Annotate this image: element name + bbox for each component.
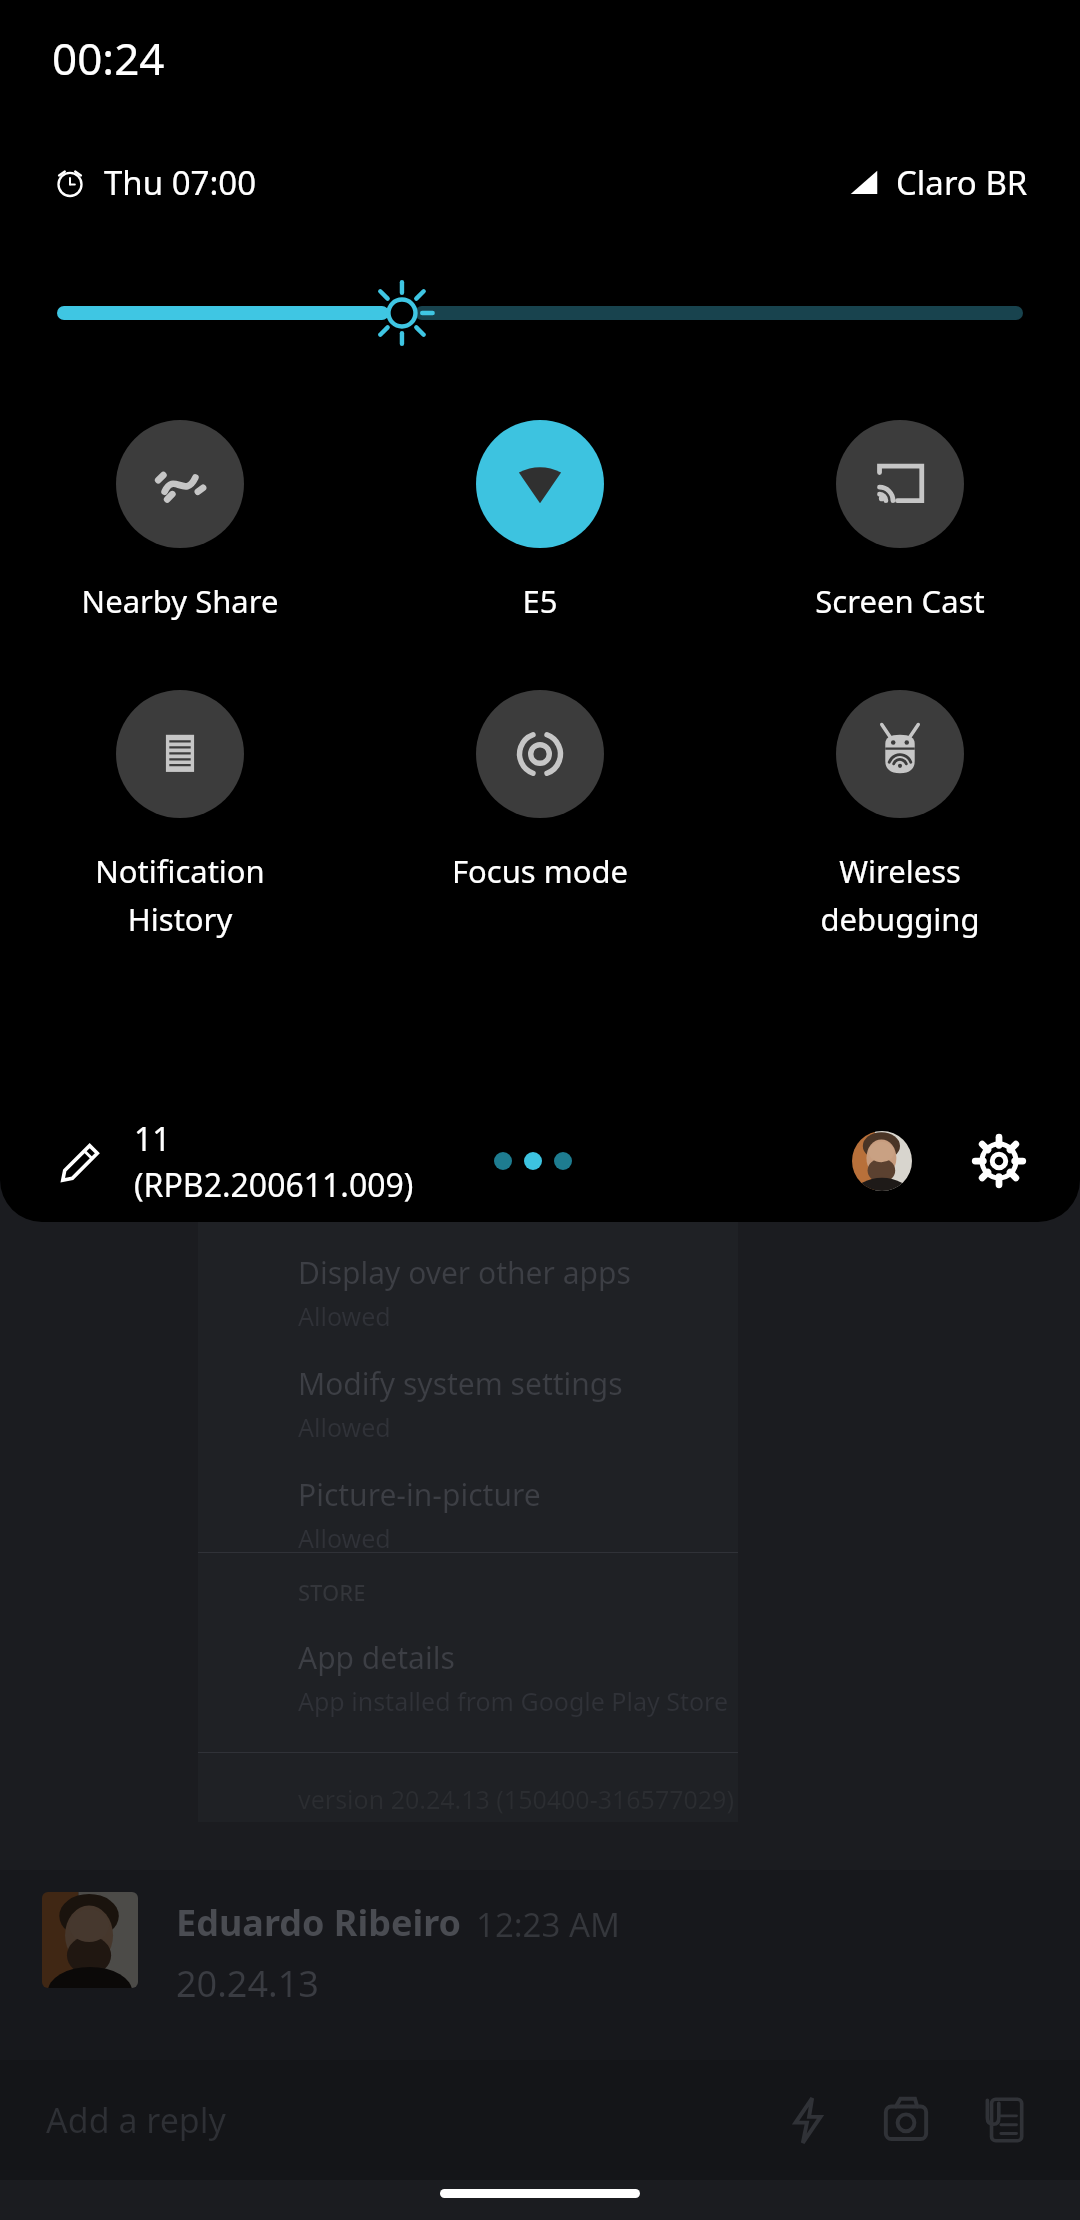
button[interactable]: Camera: [870, 2084, 942, 2156]
staticText: App details: [298, 1637, 455, 1678]
staticText: Eduardo Ribeiro: [176, 1898, 462, 1947]
button[interactable]: Modify system settings: [298, 1363, 623, 1444]
button[interactable]: User account: [852, 1131, 912, 1191]
staticText: Nearby Share: [40, 580, 320, 622]
staticText: Screen Cast: [760, 580, 1040, 622]
button[interactable]: Picture-in-picture: [298, 1474, 541, 1555]
button[interactable]: Display over other apps: [298, 1252, 631, 1333]
button[interactable]: Nearby Share: [40, 420, 320, 622]
staticText: Display over other apps: [298, 1252, 631, 1293]
staticText: Wireless debugging: [760, 850, 1040, 940]
button[interactable]: Settings: [968, 1130, 1030, 1192]
staticText: STORE: [298, 1577, 366, 1607]
button[interactable]: Wireless debugging: [760, 690, 1040, 940]
staticText: Notification History: [40, 850, 320, 940]
staticText: 00:24: [52, 28, 165, 88]
button[interactable]: E5: [400, 420, 680, 622]
staticText: Focus mode: [400, 850, 680, 892]
button[interactable]: Brightness: [64, 278, 1016, 348]
staticText: 12:23 AM: [476, 1902, 620, 1947]
staticText: Claro BR: [896, 160, 1028, 205]
button[interactable]: Edit tiles: [50, 1130, 112, 1192]
staticText: Add a reply: [46, 2097, 226, 2143]
button[interactable]: Notification History: [40, 690, 320, 940]
button[interactable]: Eduardo Ribeiro: [0, 1870, 1080, 2060]
staticText: E5: [400, 580, 680, 622]
button[interactable]: Screen Cast: [760, 420, 1040, 622]
button[interactable]: Claro BR: [848, 160, 1028, 205]
staticText: Allowed: [298, 1521, 391, 1555]
staticText: Picture-in-picture: [298, 1474, 541, 1515]
staticText: Allowed: [298, 1410, 391, 1444]
button[interactable]: Attach: [968, 2084, 1040, 2156]
staticText: 20.24.13: [176, 1959, 319, 2008]
staticText: Modify system settings: [298, 1363, 623, 1404]
button[interactable]: Thu 07:00: [52, 160, 257, 205]
button[interactable]: Focus mode: [400, 690, 680, 892]
button[interactable]: App details: [298, 1637, 728, 1718]
staticText: Thu 07:00: [104, 160, 257, 205]
staticText: App installed from Google Play Store: [298, 1684, 728, 1718]
staticText: 11 (RPB2.200611.009): [134, 1117, 494, 1206]
staticText: Allowed: [298, 1299, 391, 1333]
staticText: version 20.24.13 (150400-316577029): [298, 1782, 734, 1816]
button[interactable]: Quick reply: [772, 2084, 844, 2156]
